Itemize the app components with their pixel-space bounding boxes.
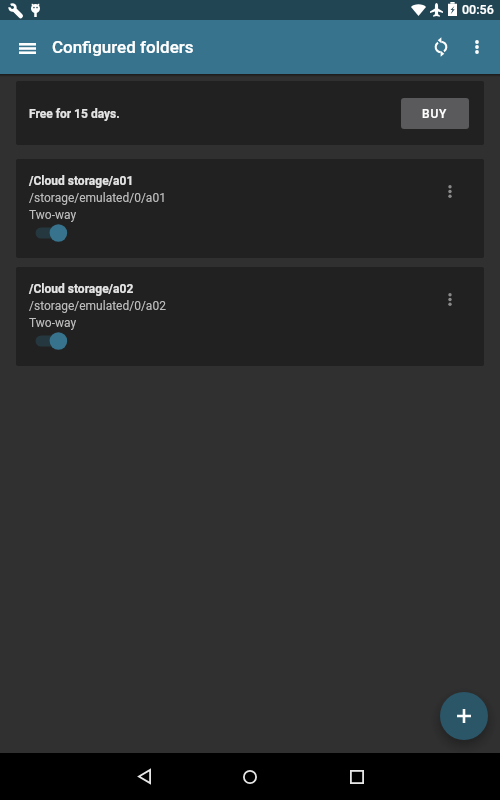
button[interactable]: Home bbox=[226, 753, 274, 800]
button[interactable]: Back bbox=[120, 753, 168, 800]
button[interactable]: /Cloud storage/a02 bbox=[16, 267, 484, 366]
staticText: /storage/emulated/0/a01 bbox=[29, 191, 166, 205]
button[interactable]: More options bbox=[458, 28, 495, 65]
staticText: Configured folders bbox=[52, 37, 194, 57]
button[interactable]: Add folder bbox=[440, 692, 488, 740]
staticText: Free for 15 days. bbox=[29, 107, 120, 121]
button[interactable]: BUY bbox=[401, 98, 469, 129]
button[interactable]: Folder options bbox=[434, 175, 466, 207]
staticText: BUY bbox=[422, 107, 448, 121]
staticText: /storage/emulated/0/a02 bbox=[29, 299, 166, 313]
button[interactable]: /Cloud storage/a01 bbox=[16, 159, 484, 258]
button[interactable]: Folder options bbox=[434, 283, 466, 315]
staticText: 00:56 bbox=[462, 2, 494, 17]
staticText: /Cloud storage/a01 bbox=[29, 174, 134, 188]
button[interactable]: Toggle folder sync bbox=[29, 331, 73, 351]
staticText: Two-way bbox=[29, 208, 77, 222]
staticText: /Cloud storage/a02 bbox=[29, 282, 134, 296]
button[interactable]: Toggle folder sync bbox=[29, 223, 73, 243]
staticText: Two-way bbox=[29, 316, 77, 330]
button[interactable]: Recent apps bbox=[333, 753, 381, 800]
button[interactable]: Sync bbox=[422, 28, 459, 65]
button[interactable]: Open navigation drawer bbox=[9, 30, 45, 66]
